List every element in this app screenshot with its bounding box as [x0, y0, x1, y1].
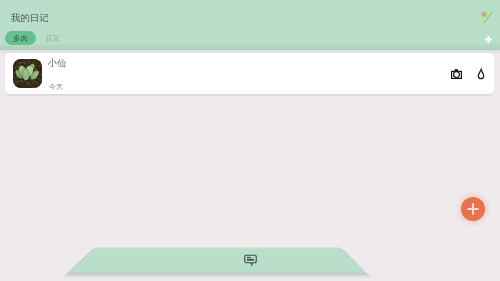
staticText: 多肉 — [13, 34, 28, 43]
staticText: 小仙 — [48, 57, 67, 69]
button[interactable]: Add photo — [446, 63, 467, 84]
button[interactable]: 花草 — [36, 31, 68, 45]
button[interactable]: 小仙 — [5, 53, 494, 94]
button[interactable]: 多肉 — [5, 31, 36, 45]
button[interactable]: Messages — [244, 254, 257, 266]
button[interactable]: Add entry — [461, 197, 485, 221]
button[interactable]: Draw — [479, 10, 492, 23]
button[interactable]: Add — [482, 33, 495, 46]
staticText: 今天 — [49, 82, 63, 91]
staticText: 花草 — [45, 34, 60, 43]
staticText: 我的日记 — [11, 12, 49, 24]
button[interactable]: Water plant — [470, 63, 491, 84]
